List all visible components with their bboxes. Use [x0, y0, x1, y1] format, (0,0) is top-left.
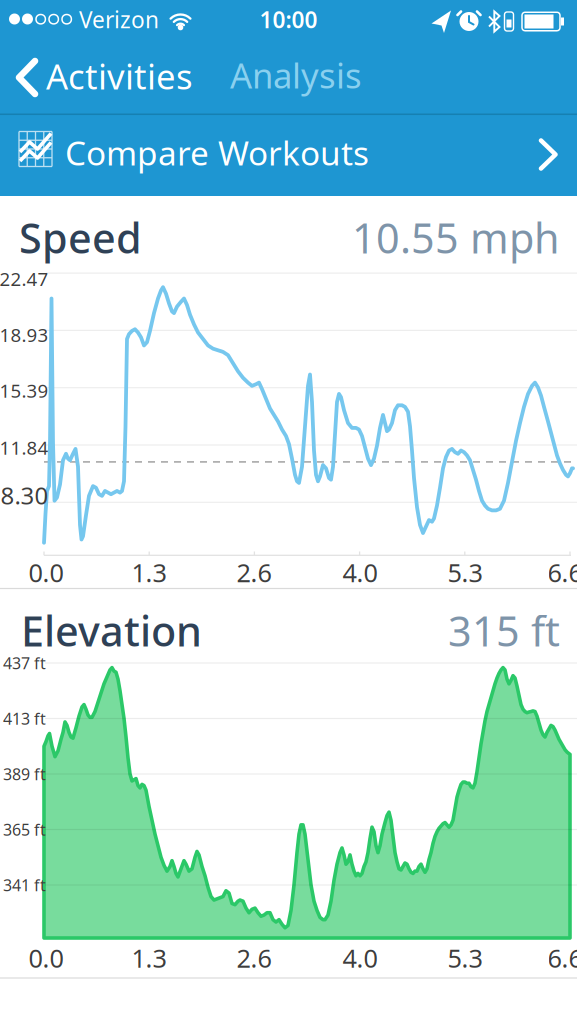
button[interactable]: Activities	[0, 48, 190, 104]
staticText: 5.3	[447, 941, 482, 975]
staticText: 437 ft	[3, 652, 46, 674]
staticText: Activities	[46, 53, 193, 99]
staticText: Elevation	[21, 603, 202, 658]
staticText: 365 ft	[3, 819, 46, 840]
staticText: 10:00	[259, 4, 317, 34]
staticText: 2.6	[236, 556, 271, 589]
staticText: 11.84	[0, 435, 48, 460]
staticText: Analysis	[230, 52, 362, 98]
staticText: Verizon	[79, 4, 159, 34]
staticText: 4.0	[342, 941, 377, 975]
staticText: 1.3	[131, 941, 166, 975]
staticText: 6.6	[547, 556, 577, 589]
staticText: 5.3	[447, 556, 482, 589]
staticText: 0.0	[28, 556, 63, 589]
staticText: 0.0	[28, 941, 63, 975]
staticText: 4.0	[342, 556, 377, 589]
staticText: 6.6	[547, 941, 577, 975]
staticText: 10.55 mph	[352, 210, 560, 265]
staticText: 315 ft	[448, 603, 560, 658]
staticText: Speed	[19, 210, 142, 265]
staticText: 22.47	[0, 266, 48, 291]
staticText: 15.39	[0, 378, 48, 403]
staticText: 1.3	[131, 556, 166, 589]
staticText: Compare Workouts	[65, 130, 369, 175]
button[interactable]: Compare Workouts	[0, 115, 577, 195]
staticText: 341 ft	[3, 874, 46, 896]
staticText: 18.93	[0, 322, 48, 347]
staticText: 8.30	[0, 479, 48, 511]
staticText: 389 ft	[3, 763, 46, 785]
staticText: 2.6	[236, 941, 271, 975]
staticText: 413 ft	[3, 708, 46, 729]
